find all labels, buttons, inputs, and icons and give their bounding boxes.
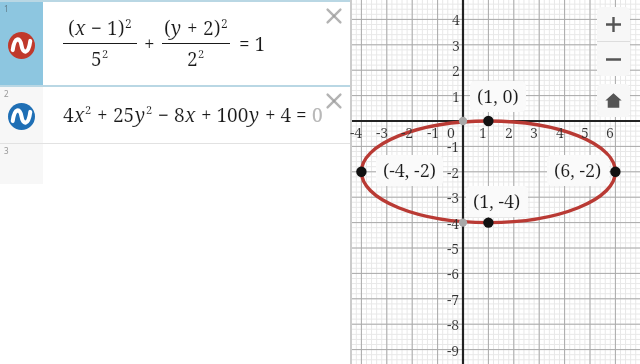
staticText: y [249,102,260,128]
staticText: -1 [427,123,440,142]
staticText: ( [68,15,75,41]
staticText: 2 [102,46,109,61]
staticText: + [182,15,203,41]
staticText: + 4 = [260,102,312,128]
staticText: x [185,102,196,128]
staticText: − [86,15,107,41]
staticText: (1, -4) [473,189,521,214]
staticText: 5 [581,123,589,142]
button[interactable]: 2 [0,87,350,143]
staticText: 1 [452,87,460,106]
staticText: 2 [187,46,198,72]
staticText: 2 [85,102,92,117]
staticText: 2 [452,61,460,80]
staticText: 2 [221,15,228,31]
staticText: -3 [447,188,460,207]
staticText: 1 [479,123,487,142]
button[interactable]: Default zoom, home [597,84,630,117]
staticText: -8 [447,315,460,334]
button[interactable]: Zoom in [597,7,630,41]
staticText: ( [164,15,171,41]
staticText: 2 [203,15,214,41]
staticText: 2 [4,88,9,99]
button[interactable]: 1 [0,2,350,85]
staticText: -4 [350,123,363,142]
staticText: -2 [447,163,460,182]
staticText: + 100 [196,102,249,128]
staticText: 0 [447,123,455,142]
staticText: − 8 [153,102,185,128]
staticText: = 1 [239,31,266,57]
staticText: ) [214,15,221,41]
staticText: + [144,31,155,57]
button[interactable]: Delete expression 1 [324,6,344,26]
staticText: 2 [198,46,205,61]
staticText: y [135,102,146,128]
button[interactable]: 3 [0,144,350,184]
staticText: (-4, -2) [383,158,436,183]
staticText: (1, 0) [477,84,519,109]
button[interactable]: Zoom out [597,42,630,76]
staticText: 1 [4,3,9,14]
staticText: 25 [113,102,135,128]
staticText: x [74,102,85,128]
staticText: 3 [452,36,460,55]
staticText: 2 [125,15,132,31]
staticText: x [75,15,86,41]
staticText: 1 [107,15,118,41]
staticText: 0 [312,102,323,128]
staticText: 4 [556,123,564,142]
button[interactable]: Delete expression 2 [324,91,344,111]
staticText: -3 [376,123,389,142]
staticText: -9 [447,341,460,360]
staticText: 6 [606,123,614,142]
staticText: 4 [452,10,460,29]
staticText: 3 [530,123,538,142]
staticText: -5 [447,239,460,258]
staticText: ) [118,15,125,41]
staticText: 4 [63,102,74,128]
staticText: 3 [4,145,9,156]
staticText: y [171,15,182,41]
staticText: -2 [401,123,414,142]
staticText: 5 [91,46,102,72]
staticText: -4 [447,214,460,233]
staticText: -7 [447,290,460,309]
staticText: -6 [447,264,460,283]
staticText: (6, -2) [554,158,602,183]
staticText: -1 [447,137,460,156]
staticText: + [92,102,113,128]
staticText: 2 [146,102,153,117]
staticText: 2 [505,123,513,142]
